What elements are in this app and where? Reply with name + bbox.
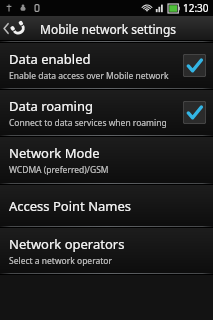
staticText: Connect to data services when roaming [9, 117, 167, 129]
button[interactable]: Toggle setting [183, 54, 206, 77]
staticText: Network Mode [9, 144, 100, 162]
staticText: Network operators [9, 235, 125, 253]
staticText: Select a network operator [9, 255, 112, 267]
staticText: Data enabled [9, 50, 91, 68]
staticText: Enable data access over Mobile network [9, 70, 169, 82]
staticText: Mobile network settings [40, 21, 177, 37]
button[interactable]: Network operators [0, 228, 213, 273]
button[interactable]: Network Mode [0, 137, 213, 183]
staticText: 12:30 [183, 1, 209, 15]
button[interactable]: Navigate up [0, 16, 36, 41]
button[interactable]: Data enabled [0, 43, 213, 88]
button[interactable]: Data roaming [0, 90, 213, 135]
staticText: Data roaming [9, 97, 93, 115]
button[interactable]: Access Point Names [0, 185, 213, 226]
staticText: Access Point Names [9, 197, 132, 215]
staticText: WCDMA (preferred)/GSM [9, 164, 109, 176]
button[interactable]: Toggle setting [183, 101, 206, 124]
